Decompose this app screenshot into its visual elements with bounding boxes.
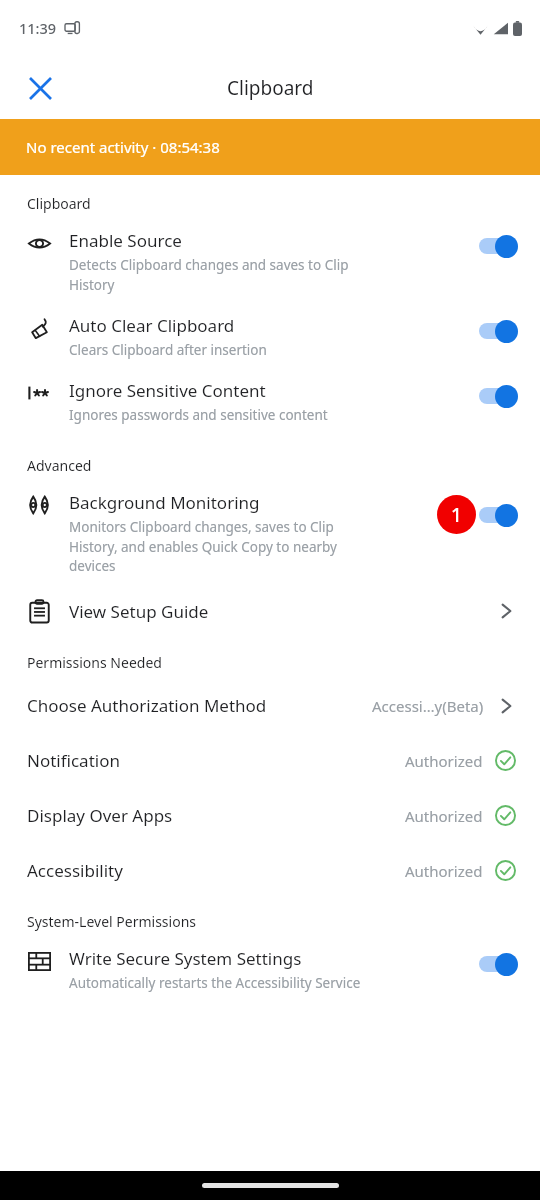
staticText: Accessi…y(Beta) [372, 696, 484, 716]
staticText: Ignores passwords and sensitive content [69, 406, 328, 424]
staticText: Clipboard [27, 194, 91, 213]
staticText: Clipboard [227, 75, 314, 101]
button[interactable]: Close [16, 64, 64, 112]
staticText: 11:39 [19, 18, 57, 38]
button[interactable]: Background Monitoring [0, 481, 540, 585]
staticText: Authorized [405, 806, 483, 826]
button[interactable]: Accessibility [0, 843, 540, 898]
button[interactable]: Toggle [478, 383, 518, 409]
staticText: Authorized [405, 751, 483, 771]
staticText: Advanced [27, 456, 92, 475]
staticText: Permissions Needed [27, 653, 162, 672]
button[interactable]: Write Secure System Settings [0, 937, 540, 1002]
button[interactable]: Ignore Sensitive Content [0, 369, 540, 434]
staticText: No recent activity · 08:54:38 [26, 137, 220, 157]
button[interactable]: Toggle [478, 318, 518, 344]
button[interactable]: Enable Source [0, 219, 540, 304]
staticText: Background Monitoring [69, 491, 260, 514]
button[interactable]: View Setup Guide [0, 585, 540, 637]
button[interactable]: Notification [0, 733, 540, 788]
button[interactable]: Toggle [478, 502, 518, 528]
staticText: 1 [451, 502, 462, 528]
staticText: Authorized [405, 861, 483, 881]
staticText: Detects Clipboard changes and saves to C… [69, 256, 349, 294]
button[interactable]: Choose Authorization Method [0, 678, 540, 733]
staticText: Display Over Apps [27, 804, 173, 827]
button[interactable]: Toggle [478, 233, 518, 259]
button[interactable]: Toggle [478, 951, 518, 977]
staticText: Enable Source [69, 229, 182, 252]
staticText: Monitors Clipboard changes, saves to Cli… [69, 518, 337, 575]
button[interactable]: Display Over Apps [0, 788, 540, 843]
staticText: Ignore Sensitive Content [69, 379, 266, 402]
staticText: Write Secure System Settings [69, 947, 302, 970]
staticText: Accessibility [27, 859, 123, 882]
button[interactable]: No recent activity · 08:54:38 [0, 119, 540, 175]
button[interactable]: Auto Clear Clipboard [0, 304, 540, 369]
staticText: Clears Clipboard after insertion [69, 341, 267, 359]
staticText: Notification [27, 749, 120, 772]
staticText: View Setup Guide [69, 600, 496, 623]
staticText: Auto Clear Clipboard [69, 314, 235, 337]
staticText: Automatically restarts the Accessibility… [69, 974, 361, 992]
staticText: System-Level Permissions [27, 912, 196, 931]
staticText: Choose Authorization Method [27, 694, 267, 717]
